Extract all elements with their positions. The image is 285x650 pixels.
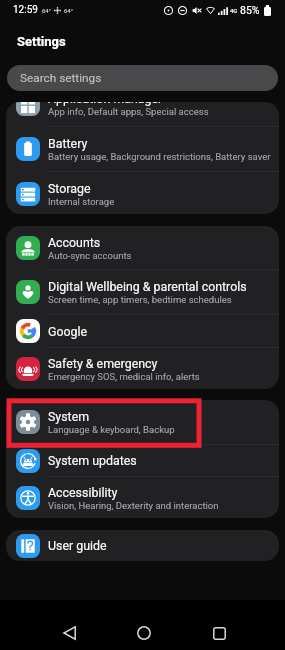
button[interactable]: Battery (6, 127, 279, 171)
staticText: Safety & emergency (48, 356, 158, 371)
button[interactable]: User guide (6, 530, 279, 561)
button[interactable]: Accessibility (6, 477, 279, 518)
staticText: Battery usage, Background restrictions, … (48, 151, 271, 162)
staticText: Google (48, 324, 88, 339)
staticText: 12:59 (13, 4, 38, 16)
staticText: 85% (240, 4, 260, 16)
staticText: Battery (48, 136, 88, 151)
staticText: Storage (48, 181, 91, 196)
staticText: System (48, 409, 90, 424)
staticText: Accounts (48, 235, 101, 250)
staticText: Digital Wellbeing & parental controls (48, 279, 247, 294)
staticText: System updates (48, 453, 137, 468)
staticText: Settings (17, 34, 66, 49)
button[interactable]: Recent apps (205, 619, 233, 647)
staticText: Vision, Hearing, Dexterity and interacti… (48, 500, 219, 511)
button[interactable]: Safety & emergency (6, 348, 279, 389)
staticText: Application manager (48, 102, 163, 106)
staticText: Language & keyboard, Backup (48, 424, 175, 435)
staticText: Internal storage (48, 196, 115, 207)
staticText: Screen time, app timers, bedtime schedul… (48, 294, 232, 305)
staticText: 4G (230, 7, 238, 14)
staticText: 64° (64, 7, 73, 14)
staticText: User guide (48, 538, 107, 553)
button[interactable]: Search settings (7, 65, 278, 91)
button[interactable]: Accounts (6, 226, 279, 269)
button[interactable]: Digital Wellbeing & parental controls (6, 270, 279, 314)
button[interactable]: Home (130, 619, 158, 647)
staticText: Search settings (20, 71, 102, 85)
staticText: Auto-sync accounts (48, 250, 132, 261)
button[interactable]: Google (6, 315, 279, 347)
button[interactable]: Back (55, 619, 83, 647)
button[interactable]: Application manager (6, 102, 279, 126)
button[interactable]: System (6, 400, 279, 444)
staticText: App info, Default apps, Special access (48, 106, 209, 117)
button[interactable]: System updates (6, 445, 279, 476)
staticText: Emergency SOS, medical info, alerts (48, 371, 200, 382)
button[interactable]: Storage (6, 172, 279, 214)
staticText: Accessibility (48, 485, 118, 500)
staticText: 64° (42, 7, 51, 14)
